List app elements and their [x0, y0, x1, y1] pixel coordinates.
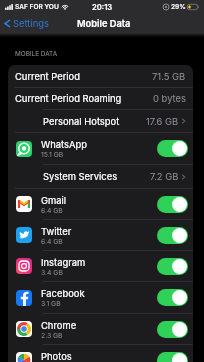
staticText: 3.1 GB [41, 299, 61, 307]
staticText: 6.4 GB [41, 237, 63, 245]
button[interactable]: Toggle [157, 258, 188, 275]
staticText: Photos [41, 351, 72, 362]
staticText: 6.4 GB [41, 206, 63, 214]
staticText: Instagram [41, 257, 86, 268]
staticText: 15.1 GB [41, 150, 64, 158]
button[interactable]: Toggle [157, 196, 188, 213]
button[interactable]: Facebook [8, 282, 193, 313]
button[interactable]: Current Period Roaming [8, 88, 193, 109]
staticText: System Services [43, 171, 118, 182]
button[interactable]: Instagram [8, 251, 193, 281]
staticText: 7.2 GB [150, 171, 179, 182]
staticText: 29% [171, 3, 186, 11]
staticText: Gmail [41, 195, 67, 206]
button[interactable]: Current Period [8, 65, 193, 87]
staticText: 3.4 GB [41, 268, 63, 276]
staticText: 20:13 [92, 3, 113, 12]
button[interactable]: Twitter [8, 220, 193, 250]
staticText: MOBILE DATA [15, 50, 58, 58]
staticText: Mobile Data [77, 18, 131, 29]
staticText: 71.5 GB [152, 71, 186, 82]
button[interactable]: WhatsApp [8, 133, 193, 164]
button[interactable]: Personal Hotspot [8, 110, 193, 132]
staticText: 17.6 GB [146, 116, 179, 127]
button[interactable]: Chrome [8, 314, 193, 344]
button[interactable]: Toggle [157, 289, 188, 306]
staticText: Settings [13, 18, 49, 29]
staticText: Facebook [41, 288, 85, 299]
staticText: WhatsApp [41, 139, 87, 150]
button[interactable]: Toggle [157, 321, 188, 338]
staticText: Personal Hotspot [43, 116, 120, 127]
staticText: Current Period Roaming [15, 93, 122, 104]
staticText: 0 bytes [153, 93, 186, 104]
button[interactable]: Toggle [157, 227, 188, 244]
button[interactable]: System Services [8, 165, 193, 188]
staticText: Current Period [15, 71, 80, 82]
staticText: 2.3 GB [41, 331, 63, 339]
button[interactable]: Gmail [8, 189, 193, 219]
staticText: Twitter [41, 226, 72, 237]
staticText: SAF FOR YOU [15, 3, 59, 11]
button[interactable]: Photos [8, 345, 193, 362]
button[interactable]: Toggle [157, 140, 188, 157]
button[interactable]: Toggle [157, 352, 188, 362]
button[interactable]: Settings [0, 18, 49, 29]
staticText: Chrome [41, 320, 77, 331]
